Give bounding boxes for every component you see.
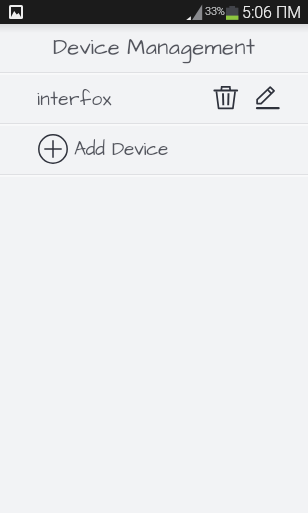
staticText: 33% [205,5,225,18]
staticText: Add Device [74,136,168,162]
staticText: Management [127,32,256,63]
staticText: interfox [37,86,112,112]
button[interactable]: Delete [209,82,243,116]
staticText: Device [53,32,120,63]
button[interactable]: interfox [0,75,308,123]
button[interactable]: Add Device [0,126,308,174]
button[interactable]: Edit [251,82,285,116]
staticText: 5:06 ПМ [242,3,302,22]
